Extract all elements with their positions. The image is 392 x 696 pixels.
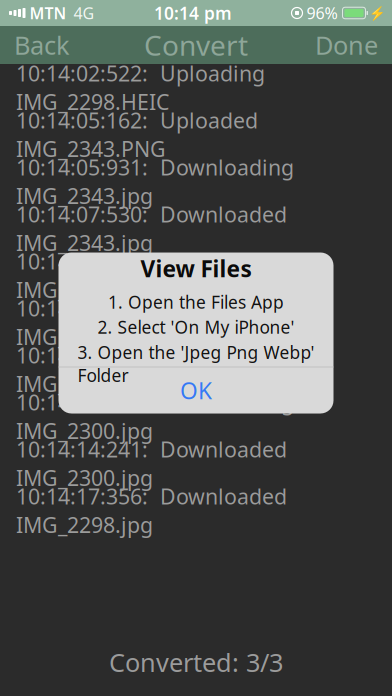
staticText: 10:14:12:905: Downloading IMG_2300.jpg xyxy=(16,388,294,445)
button[interactable]: OK xyxy=(58,367,333,413)
staticText: 10:14:08:347: Uploaded IMG_2300.HEIC xyxy=(16,247,258,304)
button[interactable]: Done xyxy=(301,26,392,64)
staticText: 10:14:17:356: Downloaded IMG_2298.jpg xyxy=(16,482,287,539)
staticText: 10:14 pm xyxy=(154,1,232,24)
staticText: 10:14:07:530: Downloaded IMG_2343.jpg xyxy=(16,200,287,257)
staticText: 10:14:11:642: Uploaded IMG_2298.HEIC xyxy=(16,341,258,398)
button[interactable]: Back xyxy=(0,26,84,64)
staticText: 10:14:10:118: Uploading IMG_2300.HEIC xyxy=(16,294,265,351)
staticText: 10:14:05:162: Uploaded IMG_2343.PNG xyxy=(16,106,258,163)
staticText: Converted: 3/3 xyxy=(109,645,283,679)
staticText: Convert xyxy=(144,26,248,64)
staticText: MTN xyxy=(29,2,66,24)
staticText: ⚡ xyxy=(369,5,386,21)
staticText: Done xyxy=(315,28,378,62)
staticText: View Files xyxy=(140,253,251,284)
staticText: 2. Select 'On My iPhone' xyxy=(97,316,294,339)
staticText: 10:14:02:522: Uploading IMG_2298.HEIC xyxy=(16,59,265,116)
staticText: 10:14:14:241: Downloaded IMG_2300.jpg xyxy=(16,435,287,492)
staticText: 1. Open the Files App xyxy=(108,291,284,314)
staticText: 3. Open the 'Jpeg Png Webp' Folder xyxy=(77,341,314,387)
staticText: Back xyxy=(14,28,70,62)
staticText: 10:14:05:931: Downloading IMG_2343.jpg xyxy=(16,153,294,210)
staticText: 96% xyxy=(306,2,337,24)
staticText: 4G xyxy=(73,2,94,24)
staticText: OK xyxy=(180,375,212,405)
